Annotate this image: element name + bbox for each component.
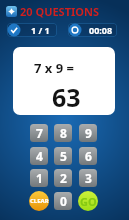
button[interactable]: App icon — [6, 6, 17, 17]
staticText: 7 — [36, 125, 43, 141]
staticText: 6 — [85, 148, 92, 164]
button[interactable]: 9 — [79, 124, 97, 142]
button[interactable]: CLEAR — [29, 191, 49, 211]
button[interactable]: 5 — [54, 147, 72, 165]
button[interactable]: 8 — [54, 124, 72, 142]
staticText: 7 x 9 = — [34, 59, 74, 77]
staticText: 1 / 1 — [31, 24, 50, 36]
staticText: CLEAR — [30, 197, 49, 205]
staticText: 8 — [60, 125, 67, 141]
button[interactable]: 1 — [30, 169, 48, 187]
staticText: 2 — [60, 170, 67, 186]
staticText: 3 — [85, 170, 92, 186]
staticText: 9 — [85, 125, 92, 141]
button[interactable]: 00:08 — [68, 23, 117, 37]
staticText: 00:08 — [89, 24, 113, 36]
button[interactable]: 6 — [79, 147, 97, 165]
staticText: GO — [80, 194, 97, 209]
button[interactable]: 4 — [30, 147, 48, 165]
button[interactable]: 3 — [79, 169, 97, 187]
staticText: 1 — [36, 170, 43, 186]
button[interactable]: 7 — [30, 124, 48, 142]
staticText: 5 — [60, 148, 67, 164]
button[interactable]: 1 / 1 — [7, 23, 57, 37]
staticText: 4 — [36, 148, 43, 164]
button[interactable]: GO — [78, 191, 98, 211]
button[interactable]: 0 — [54, 192, 72, 210]
button[interactable]: 2 — [54, 169, 72, 187]
staticText: 0 — [60, 193, 67, 209]
staticText: 20 QUESTIONS — [20, 4, 100, 19]
staticText: 63 — [52, 80, 81, 114]
